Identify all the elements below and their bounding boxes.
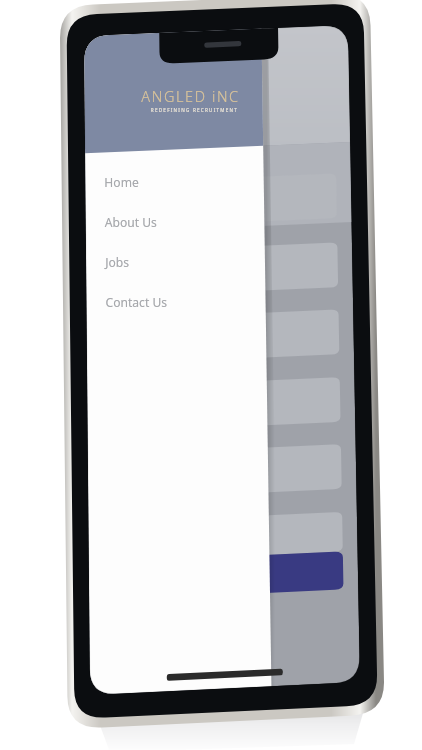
button[interactable]: Angled Inc navigation drawer (0, 0, 422, 750)
